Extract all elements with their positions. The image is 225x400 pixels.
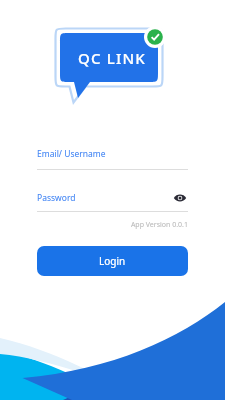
button[interactable]: Password: [37, 190, 188, 212]
staticText: Password: [37, 192, 76, 204]
staticText: QC LINK: [78, 48, 147, 68]
button[interactable]: Login: [37, 246, 188, 276]
staticText: Login: [99, 254, 126, 268]
staticText: App Version 0.0.1: [37, 220, 188, 230]
button[interactable]: Email/ Username: [37, 148, 188, 170]
button[interactable]: Show password: [172, 190, 188, 206]
staticText: Email/ Username: [37, 148, 106, 160]
